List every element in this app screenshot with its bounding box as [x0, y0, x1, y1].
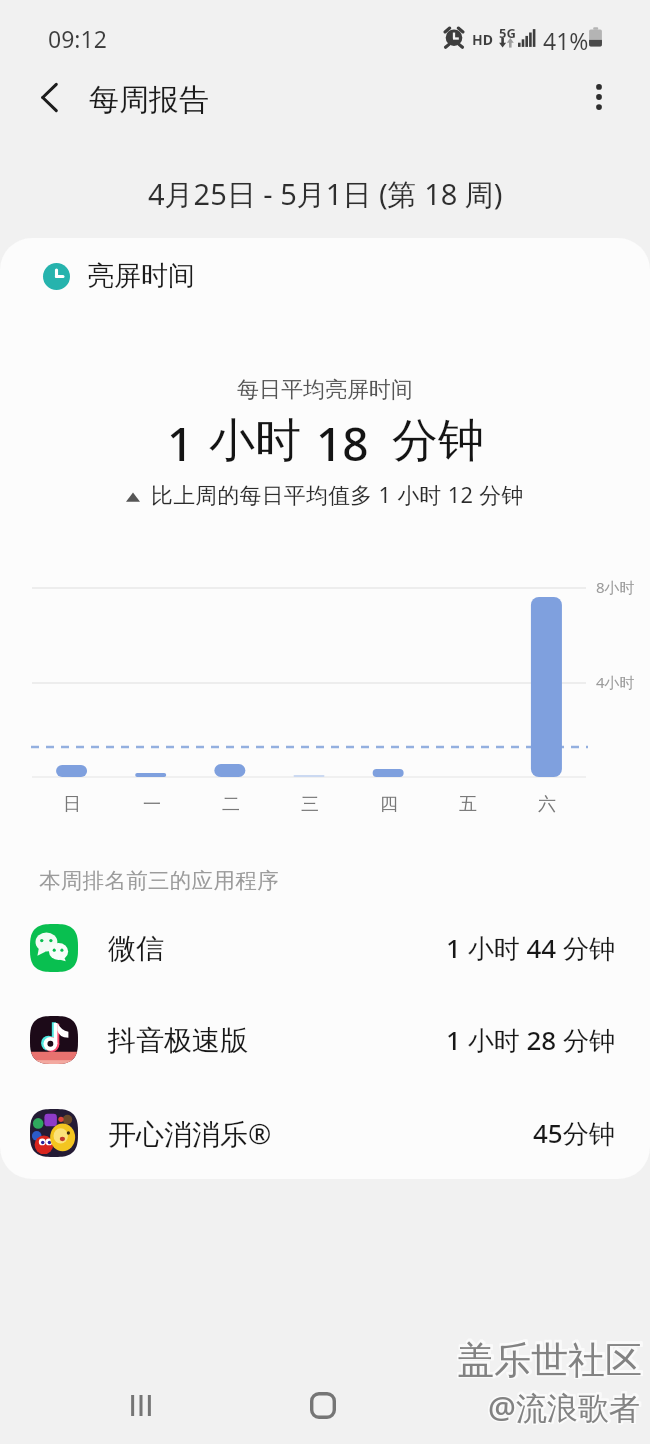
button[interactable]: 抖音极速版	[0, 994, 650, 1086]
staticText: 盖乐世社区	[458, 1337, 643, 1384]
button[interactable]: Home	[301, 1383, 345, 1427]
staticText: 09:12	[48, 23, 107, 54]
staticText: 六	[538, 793, 556, 816]
staticText: 每周报告	[89, 81, 209, 119]
staticText: 日	[63, 793, 81, 816]
staticText: @流浪歌者	[488, 1385, 640, 1427]
staticText: @流浪歌者	[489, 1385, 641, 1427]
staticText: 4小时	[596, 672, 635, 692]
staticText: @流浪歌者	[488, 1387, 640, 1429]
button[interactable]: Back	[20, 68, 78, 126]
staticText: 每日平均亮屏时间	[237, 376, 413, 404]
staticText: 微信	[108, 931, 164, 966]
staticText: 分钟	[392, 412, 484, 468]
staticText: 1	[167, 412, 194, 468]
staticText: HD	[472, 30, 493, 49]
staticText: 盖乐世社区	[457, 1338, 642, 1385]
staticText: 5G	[499, 24, 516, 42]
staticText: @流浪歌者	[487, 1386, 639, 1428]
staticText: 一	[143, 793, 161, 816]
button[interactable]: 开心消消乐®	[0, 1087, 650, 1179]
staticText: 抖音极速版	[108, 1023, 248, 1058]
staticText: 亮屏时间	[87, 259, 195, 293]
staticText: 三	[301, 793, 319, 816]
staticText: @流浪歌者	[487, 1387, 639, 1429]
button[interactable]: More options	[570, 68, 628, 126]
staticText: 盖乐世社区	[456, 1336, 641, 1383]
staticText: 小时	[209, 412, 301, 468]
staticText: 开心消消乐®	[108, 1114, 272, 1152]
button[interactable]: Recents	[119, 1383, 163, 1427]
staticText: 本周排名前三的应用程序	[39, 867, 279, 894]
staticText: 盖乐世社区	[458, 1338, 643, 1385]
staticText: 二	[222, 793, 240, 816]
staticText: 8小时	[596, 577, 635, 597]
staticText: @流浪歌者	[489, 1387, 641, 1429]
staticText: 1 小时 28 分钟	[446, 1022, 615, 1058]
staticText: 18	[316, 412, 369, 468]
staticText: 1 小时 44 分钟	[446, 930, 615, 966]
staticText: 盖乐世社区	[457, 1337, 642, 1384]
staticText: 比上周的每日平均值多 1 小时 12 分钟	[151, 480, 524, 508]
staticText: 41%	[543, 25, 589, 56]
button[interactable]: 亮屏时间	[43, 259, 195, 293]
staticText: 五	[459, 793, 477, 816]
staticText: @流浪歌者	[487, 1385, 639, 1427]
staticText: 盖乐世社区	[457, 1336, 642, 1383]
staticText: @流浪歌者	[489, 1386, 641, 1428]
staticText: @流浪歌者	[488, 1386, 640, 1428]
staticText: 四	[380, 793, 398, 816]
staticText: 盖乐世社区	[458, 1336, 643, 1383]
staticText: 4月25日 - 5月1日 (第 18 周)	[148, 174, 503, 214]
button[interactable]: 微信	[0, 902, 650, 994]
staticText: 45分钟	[533, 1115, 615, 1151]
staticText: 盖乐世社区	[456, 1337, 641, 1384]
staticText: 盖乐世社区	[456, 1338, 641, 1385]
